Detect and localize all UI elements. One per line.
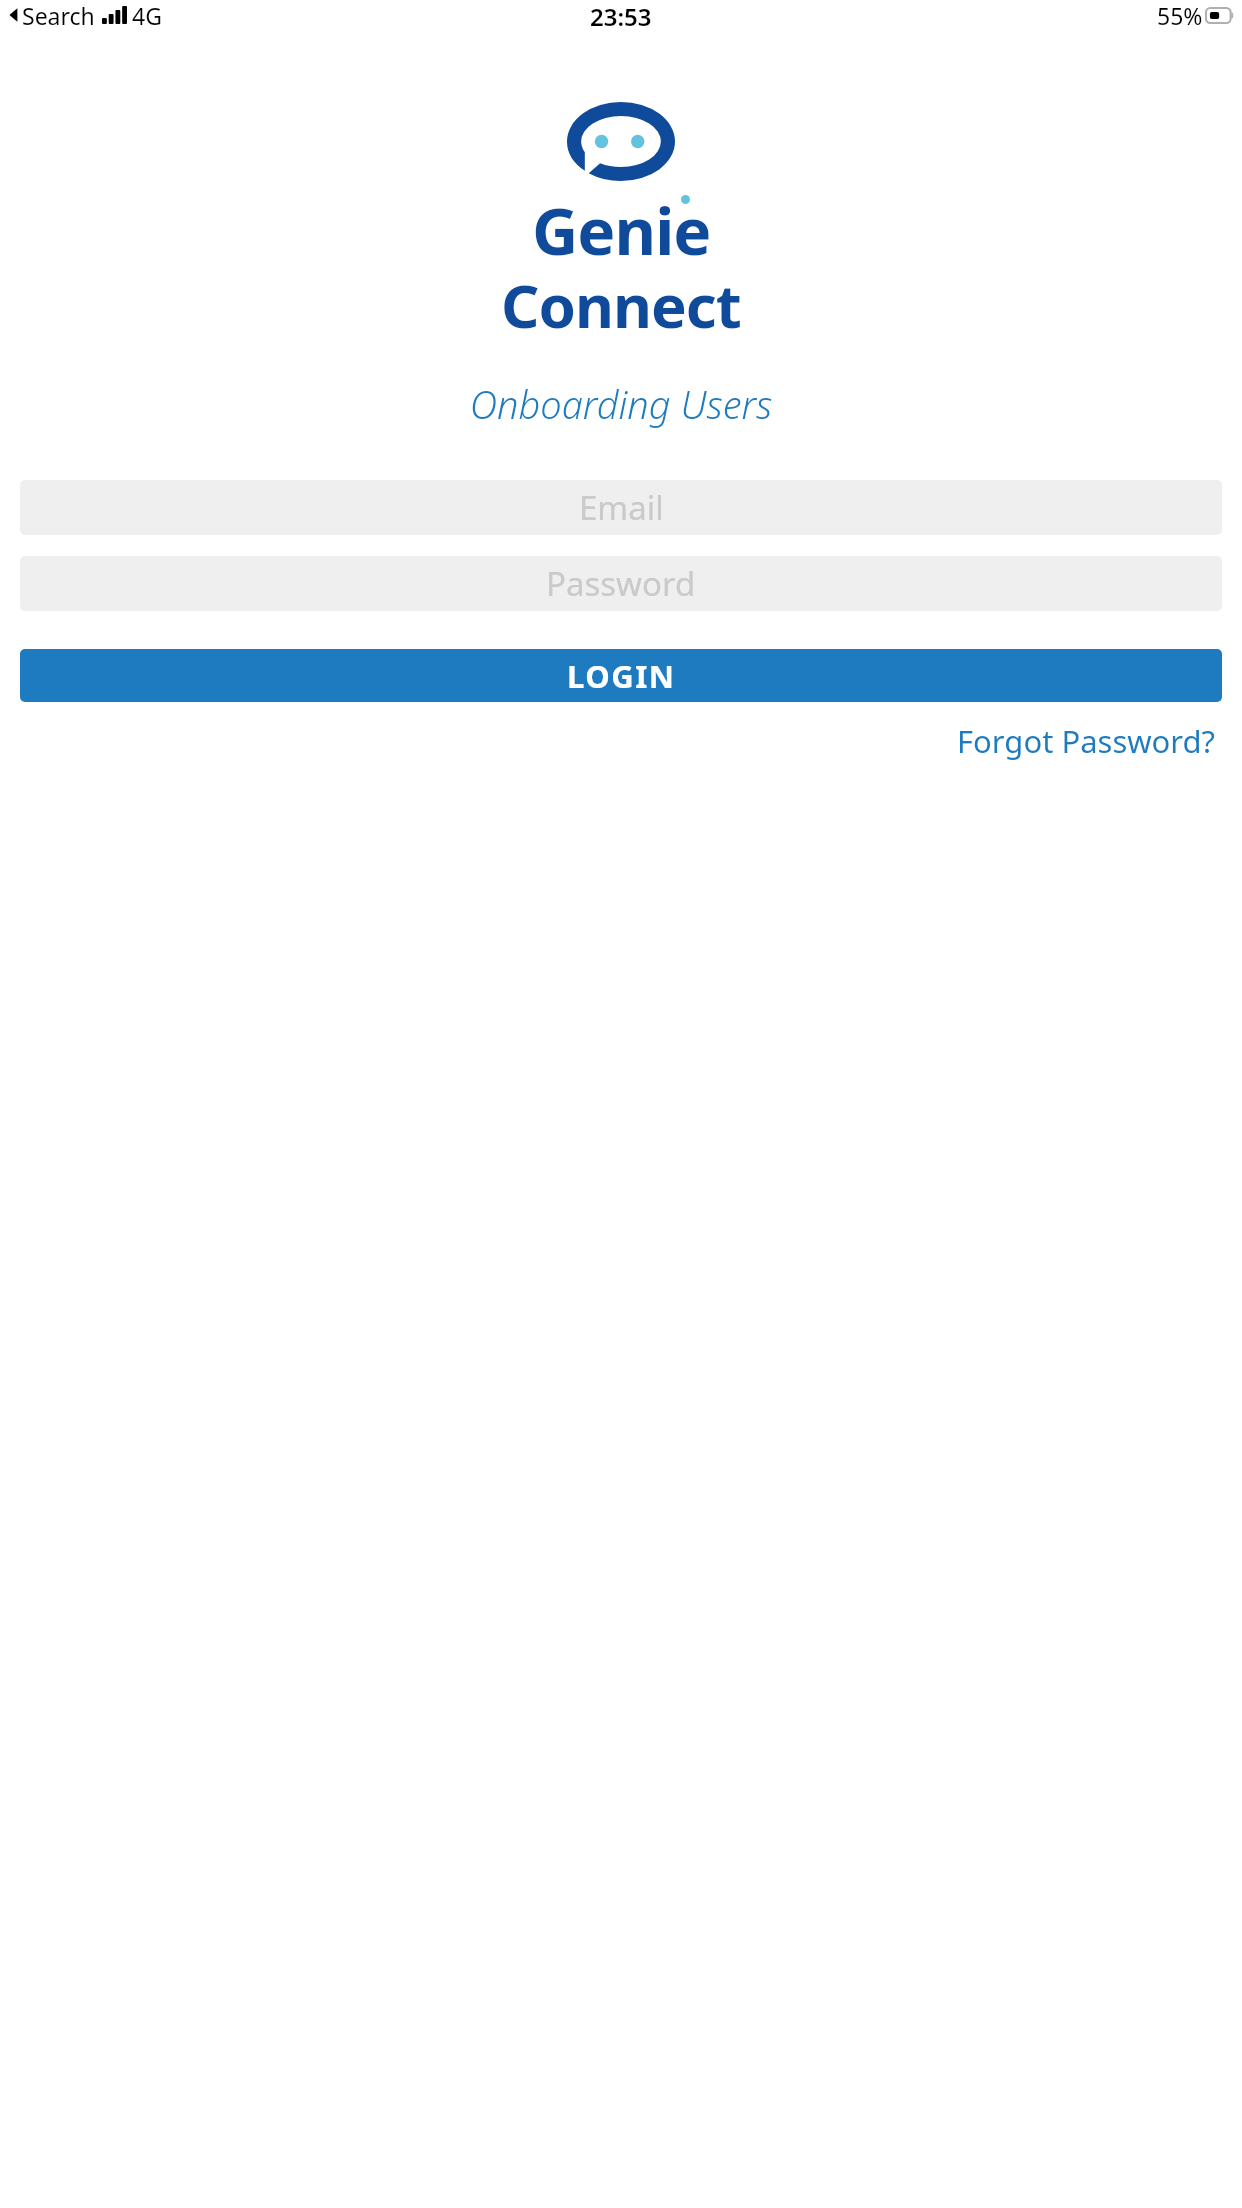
staticText: Email — [579, 485, 664, 530]
button[interactable]: Forgot Password? — [951, 712, 1222, 770]
staticText: 23:53 — [590, 0, 652, 30]
staticText: 4G — [132, 0, 162, 30]
button[interactable]: Email — [20, 480, 1222, 535]
staticText: LOGIN — [567, 655, 676, 697]
staticText: Onboarding Users — [0, 378, 1242, 430]
button[interactable]: Password — [20, 556, 1222, 611]
staticText: Genie — [532, 187, 711, 274]
staticText: Password — [546, 561, 696, 606]
staticText: Connect — [501, 264, 741, 346]
staticText: Search — [22, 0, 95, 30]
staticText: Forgot Password? — [957, 720, 1216, 762]
staticText: 55% — [1157, 0, 1203, 30]
button[interactable]: LOGIN — [20, 649, 1222, 702]
